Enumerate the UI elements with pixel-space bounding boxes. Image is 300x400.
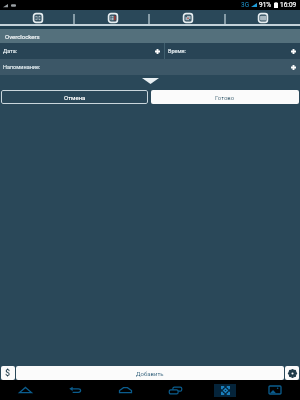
staticText: 3G: [241, 1, 250, 9]
button[interactable]: Screenshot: [250, 380, 300, 400]
button[interactable]: Tab 4: [225, 10, 300, 26]
staticText: Overclockers: [5, 33, 40, 40]
button[interactable]: Back: [50, 380, 100, 400]
button[interactable]: Currency: [1, 366, 15, 380]
staticText: Готово: [215, 94, 235, 101]
button[interactable]: Tab 1: [0, 10, 75, 26]
button[interactable]: Отмена: [1, 90, 148, 104]
button[interactable]: Время:: [165, 43, 300, 59]
button[interactable]: Multi window: [200, 380, 250, 400]
button[interactable]: Overclockers: [0, 29, 300, 43]
staticText: Время:: [168, 48, 186, 54]
button[interactable]: Home: [100, 380, 150, 400]
button[interactable]: Напоминание:: [0, 59, 300, 75]
button[interactable]: Готово: [151, 90, 299, 104]
button[interactable]: Settings: [285, 366, 299, 380]
button[interactable]: Up: [0, 380, 50, 400]
staticText: 16:09: [280, 1, 297, 9]
button[interactable]: Recents: [150, 380, 200, 400]
button[interactable]: Дата:: [0, 43, 164, 59]
staticText: Напоминание:: [3, 64, 41, 70]
staticText: $: [5, 368, 11, 379]
staticText: Добавить: [136, 370, 164, 377]
staticText: Дата:: [3, 48, 18, 54]
button[interactable]: Tab 3: [150, 10, 225, 26]
button[interactable]: Tab 2: [75, 10, 150, 26]
button[interactable]: Добавить: [16, 366, 284, 380]
staticText: 91%: [259, 1, 272, 9]
staticText: Отмена: [64, 94, 86, 101]
